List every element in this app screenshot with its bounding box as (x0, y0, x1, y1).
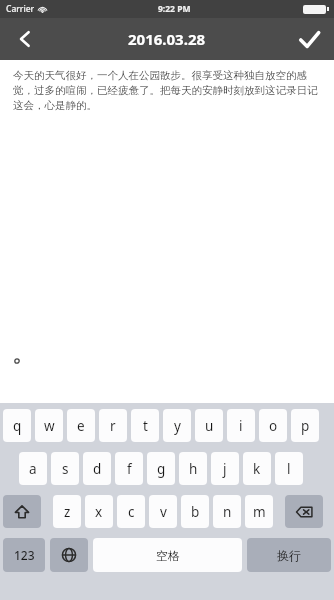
button[interactable]: d (83, 452, 111, 485)
staticText: f (127, 460, 132, 478)
button[interactable]: j (211, 452, 239, 485)
staticText: r (110, 417, 116, 435)
staticText: e (77, 417, 85, 435)
staticText: o (269, 417, 278, 435)
staticText: Carrier (6, 3, 35, 15)
button[interactable]: h (179, 452, 207, 485)
staticText: d (93, 460, 102, 478)
button[interactable]: o (259, 409, 287, 442)
staticText: p (301, 417, 310, 435)
staticText: x (95, 503, 103, 521)
button[interactable]: Back (4, 18, 46, 60)
staticText: 空格 (156, 548, 180, 563)
button[interactable]: s (51, 452, 79, 485)
staticText: y (174, 417, 181, 435)
button[interactable]: g (147, 452, 175, 485)
staticText: m (253, 503, 266, 521)
staticText: 换行 (277, 548, 301, 563)
button[interactable]: 空格 (93, 538, 242, 572)
staticText: a (29, 460, 37, 478)
button[interactable]: n (213, 495, 241, 528)
staticText: 2016.03.28 (128, 29, 206, 49)
button[interactable]: q (3, 409, 31, 442)
staticText: 今天的天气很好，一个人在公园散步。很享受这种独自放空的感觉，过多的喧闹，已经疲惫… (13, 69, 320, 112)
button[interactable]: 换行 (247, 538, 331, 572)
button[interactable]: v (149, 495, 177, 528)
staticText: h (189, 460, 198, 478)
button[interactable]: Backspace (285, 495, 323, 528)
staticText: t (143, 417, 148, 435)
button[interactable]: y (163, 409, 191, 442)
staticText: c (128, 503, 135, 521)
staticText: w (44, 417, 55, 435)
button[interactable]: p (291, 409, 319, 442)
staticText: 123 (14, 547, 35, 563)
staticText: z (64, 503, 71, 521)
button[interactable]: Switch keyboard (50, 538, 88, 572)
button[interactable]: b (181, 495, 209, 528)
staticText: k (253, 460, 261, 478)
staticText: q (13, 417, 22, 435)
button[interactable]: c (117, 495, 145, 528)
button[interactable]: a (19, 452, 47, 485)
button[interactable]: k (243, 452, 271, 485)
button[interactable]: e (67, 409, 95, 442)
button[interactable]: t (131, 409, 159, 442)
staticText: i (239, 417, 243, 435)
staticText: 9:22 PM (158, 3, 191, 15)
staticText: v (160, 503, 167, 521)
button[interactable]: u (195, 409, 223, 442)
staticText: b (191, 503, 200, 521)
button[interactable]: z (53, 495, 81, 528)
staticText: l (287, 460, 291, 478)
button[interactable]: l (275, 452, 303, 485)
button[interactable]: Shift (3, 495, 41, 528)
staticText: j (223, 460, 227, 478)
button[interactable]: f (115, 452, 143, 485)
staticText: n (223, 503, 232, 521)
button[interactable]: Done (288, 18, 330, 60)
button[interactable]: r (99, 409, 127, 442)
staticText: u (205, 417, 214, 435)
staticText: g (157, 460, 166, 478)
button[interactable]: m (245, 495, 273, 528)
button[interactable]: w (35, 409, 63, 442)
staticText: s (62, 460, 69, 478)
button[interactable]: 123 (3, 538, 45, 572)
button[interactable]: x (85, 495, 113, 528)
button[interactable]: i (227, 409, 255, 442)
